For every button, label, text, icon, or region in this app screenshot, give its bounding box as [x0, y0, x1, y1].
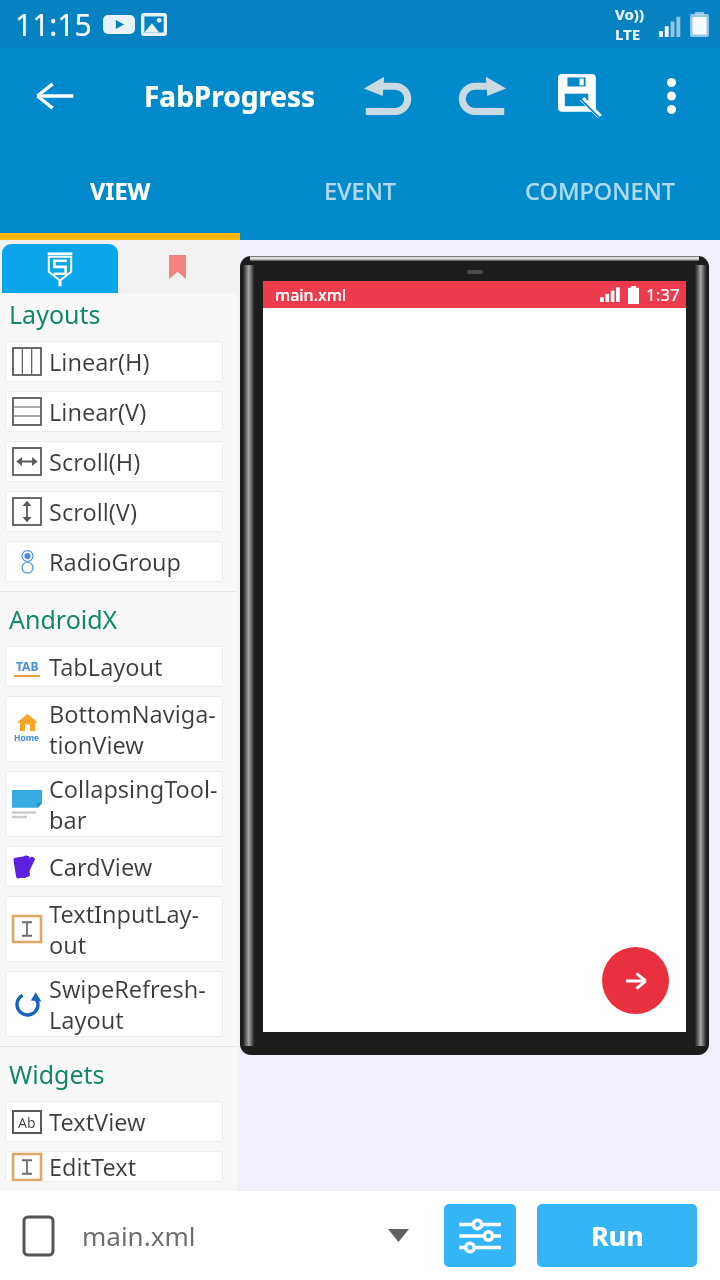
staticText: RadioGroup [49, 546, 182, 578]
staticText: CardView [49, 851, 153, 883]
staticText: Home [14, 732, 40, 744]
button[interactable]: EVENT [240, 144, 480, 233]
button[interactable]: EditText [5, 1151, 223, 1182]
staticText: EditText [49, 1151, 137, 1182]
button[interactable]: Next [602, 947, 669, 1014]
button[interactable]: Select file [380, 1221, 417, 1250]
staticText: TabLayout [49, 651, 163, 683]
button[interactable]: Save [548, 48, 612, 144]
button[interactable]: Settings [444, 1204, 516, 1267]
staticText: Widgets [9, 1057, 105, 1091]
button[interactable]: Redo [451, 48, 517, 144]
button[interactable]: More options [645, 48, 697, 144]
button[interactable]: Ab [5, 1101, 223, 1142]
staticText: CollapsingTool- bar [49, 773, 218, 836]
staticText: main.xml [82, 1218, 196, 1253]
staticText: main.xml [275, 284, 347, 306]
button[interactable]: VIEW [0, 144, 240, 233]
button[interactable]: Undo [353, 48, 419, 144]
button[interactable]: Palette [2, 244, 118, 293]
staticText: AndroidX [9, 602, 118, 636]
staticText: BottomNaviga- tionView [49, 698, 216, 761]
button[interactable]: CardView [5, 846, 223, 887]
button[interactable]: Back [20, 48, 90, 144]
staticText: 1:37 [646, 283, 680, 306]
staticText: FabProgress [144, 77, 316, 115]
button[interactable]: CollapsingTool- bar [5, 771, 223, 837]
button[interactable]: Home [5, 696, 223, 762]
button[interactable]: Run [537, 1204, 697, 1267]
button[interactable]: Linear(H) [5, 341, 223, 382]
button[interactable]: SwipeRefresh- Layout [5, 971, 223, 1037]
staticText: Linear(V) [49, 396, 147, 428]
staticText: TextInputLay- out [49, 898, 200, 961]
button[interactable]: Bookmarks [118, 240, 237, 293]
staticText: Scroll(V) [49, 496, 137, 528]
staticText: Run [591, 1217, 644, 1254]
staticText: LTE [615, 24, 641, 44]
button[interactable]: COMPONENT [480, 144, 720, 233]
button[interactable]: Linear(V) [5, 391, 223, 432]
staticText: TAB [16, 658, 39, 674]
staticText: EVENT [324, 175, 397, 207]
button[interactable]: RadioGroup [5, 541, 223, 582]
staticText: Layouts [9, 297, 101, 331]
staticText: COMPONENT [525, 175, 675, 207]
button[interactable]: TextInputLay- out [5, 896, 223, 962]
staticText: TextView [49, 1106, 146, 1138]
staticText: Scroll(H) [49, 446, 141, 478]
button[interactable]: Scroll(V) [5, 491, 223, 532]
staticText: Ab [18, 1113, 36, 1132]
button[interactable]: TAB [5, 646, 223, 687]
staticText: VIEW [90, 175, 151, 207]
staticText: SwipeRefresh- Layout [49, 973, 206, 1036]
button[interactable]: Scroll(H) [5, 441, 223, 482]
button[interactable]: Preview device [20, 1213, 57, 1259]
staticText: Linear(H) [49, 346, 150, 378]
staticText: 11:15 [15, 4, 92, 45]
staticText: Vo)) [615, 4, 644, 24]
